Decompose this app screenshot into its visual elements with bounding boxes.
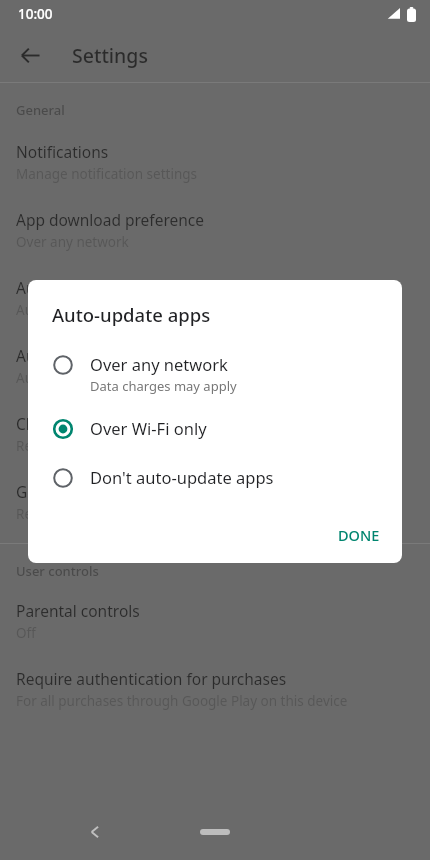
staticText: For all purchases through Google Play on…	[16, 692, 348, 710]
staticText: Auto-update apps	[52, 302, 211, 327]
button[interactable]: Home	[200, 829, 230, 835]
staticText: 10:00	[18, 5, 53, 23]
button[interactable]: Require authentication for purchases	[0, 648, 430, 716]
staticText: Over any network	[90, 353, 228, 375]
staticText: Parental controls	[16, 600, 140, 621]
staticText: Remove results from Google Play wish lis…	[16, 505, 287, 523]
button[interactable]: Auto-update apps	[0, 257, 430, 325]
staticText: Settings	[72, 42, 148, 69]
button[interactable]: App download preference	[0, 189, 430, 257]
staticText: Auto-play videos	[16, 345, 137, 366]
button[interactable]: Clear local search history	[0, 393, 430, 461]
staticText: Remove searches from Google Play	[16, 437, 240, 455]
staticText: Notifications	[16, 141, 109, 162]
staticText: Off	[16, 624, 36, 642]
staticText: Over Wi-Fi only	[90, 417, 207, 439]
staticText: App download preference	[16, 209, 205, 230]
staticText: Manage notification settings	[16, 165, 198, 183]
button[interactable]: Auto-play videos	[0, 325, 430, 393]
staticText: Don't auto-update apps	[90, 466, 274, 488]
staticText: User controls	[16, 562, 99, 580]
button[interactable]: Back	[78, 815, 112, 849]
staticText: Require authentication for purchases	[16, 668, 287, 689]
button[interactable]: Google Play Instant	[0, 461, 430, 529]
staticText: Over any network	[16, 233, 129, 251]
button[interactable]: Don't auto-update apps	[28, 458, 402, 497]
staticText: Clear local search history	[16, 413, 198, 434]
staticText: Google Play Instant	[16, 481, 159, 502]
button[interactable]: DONE	[326, 515, 392, 555]
button[interactable]: Back	[10, 35, 50, 75]
button[interactable]: Over Wi-Fi only	[28, 409, 402, 448]
button[interactable]: Over any network	[28, 345, 402, 403]
button[interactable]: Parental controls	[0, 588, 430, 648]
button[interactable]: Notifications	[0, 129, 430, 189]
staticText: Data charges may apply	[90, 377, 237, 395]
staticText: General	[16, 101, 65, 119]
staticText: Auto-update apps	[16, 277, 147, 298]
staticText: Auto-play videos over Wi-Fi only	[16, 369, 218, 387]
staticText: Auto-update apps over Wi-Fi only	[16, 301, 226, 319]
staticText: DONE	[338, 525, 380, 545]
